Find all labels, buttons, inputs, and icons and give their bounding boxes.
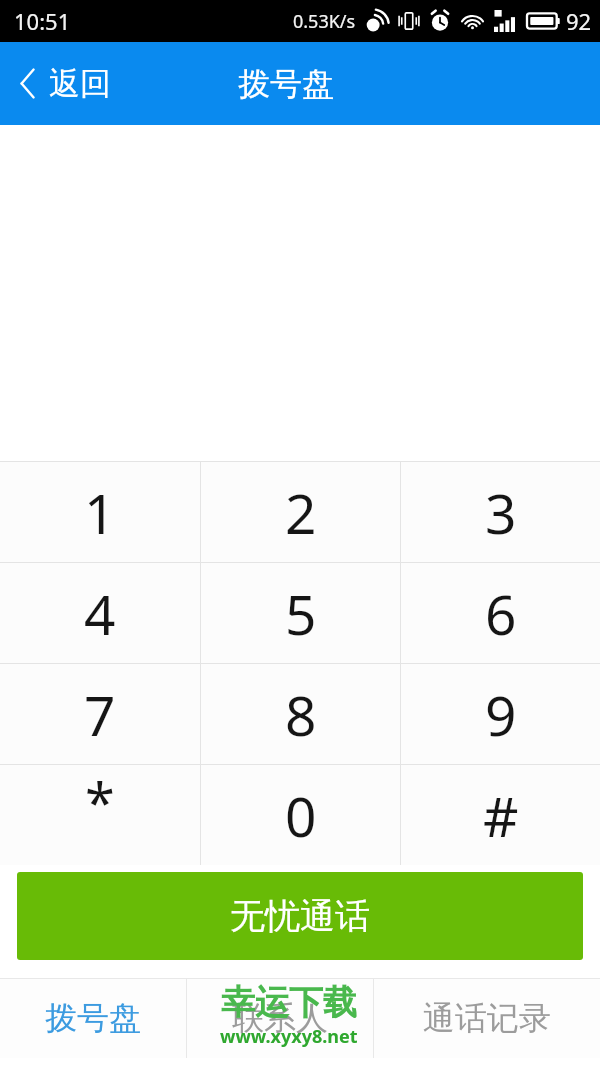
button[interactable]: # [401,765,600,865]
button[interactable]: Back [0,42,129,125]
button[interactable]: 通话记录 [374,978,600,1058]
staticText: 7 [84,677,116,752]
staticText: 10:51 [14,6,71,36]
button[interactable]: 3 [401,462,600,562]
staticText: 0.53K/s [293,9,356,34]
staticText: 8 [285,677,317,752]
staticText: 无忧通话 [230,894,370,938]
staticText: 3 [485,475,517,550]
button[interactable]: 0 [201,765,400,865]
staticText: 0 [285,778,317,853]
button[interactable]: 7 [0,664,200,764]
staticText: 返回 [49,64,111,103]
button[interactable]: 无忧通话 [17,872,583,960]
button[interactable]: 4 [0,563,200,663]
button[interactable]: * [0,765,200,865]
staticText: 9 [485,677,517,752]
button[interactable]: 6 [401,563,600,663]
staticText: 5 [285,576,317,651]
staticText: 4 [84,576,116,651]
staticText: 联系人 [232,998,328,1038]
staticText: www.xyxy8.net [220,1024,358,1049]
button[interactable]: 2 [201,462,400,562]
staticText: 拨号盘 [45,998,141,1038]
staticText: 6 [485,576,517,651]
staticText: # [483,778,519,853]
staticText: 拨号盘 [238,64,334,104]
staticText: 通话记录 [423,998,551,1038]
staticText: 幸运下载 [221,981,357,1024]
staticText: 2 [285,475,317,550]
button[interactable]: 拨号盘 [0,978,186,1058]
other: Back [20,68,36,99]
button[interactable]: 1 [0,462,200,562]
staticText: 92 [566,6,592,36]
button[interactable]: 联系人 [187,978,373,1058]
button[interactable]: 9 [401,664,600,764]
staticText: 1 [84,475,116,550]
staticText: * [85,765,115,839]
button[interactable]: 8 [201,664,400,764]
button[interactable]: 5 [201,563,400,663]
